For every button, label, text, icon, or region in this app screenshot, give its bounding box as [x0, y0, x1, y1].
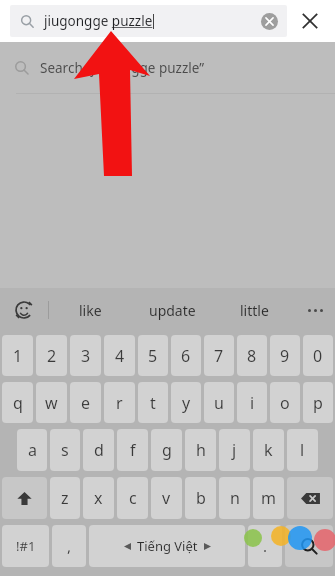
staticText: like [79, 301, 102, 320]
staticText: o [280, 392, 290, 414]
staticText: e [81, 392, 91, 414]
staticText: b [196, 487, 206, 509]
button[interactable]: Search [285, 525, 333, 567]
button[interactable]: j [219, 429, 250, 471]
button[interactable]: update [131, 288, 213, 332]
button[interactable]: z [50, 477, 80, 519]
button[interactable]: p [303, 382, 333, 423]
button[interactable]: 2 [36, 335, 67, 376]
staticText: . [263, 536, 268, 556]
button[interactable]: 9 [270, 335, 300, 376]
button[interactable]: Shift [2, 477, 47, 519]
button[interactable]: a [17, 429, 47, 471]
button[interactable]: 3 [70, 335, 101, 376]
staticText: !#1 [16, 537, 36, 555]
button[interactable]: x [83, 477, 114, 519]
button[interactable]: f [117, 429, 148, 471]
staticText: 1 [13, 345, 23, 367]
staticText: , [67, 536, 72, 556]
staticText: h [196, 439, 206, 461]
staticText: 8 [247, 345, 257, 367]
button[interactable]: . [248, 525, 282, 567]
button[interactable]: , [52, 525, 86, 567]
button[interactable]: h [185, 429, 216, 471]
button[interactable]: v [151, 477, 182, 519]
staticText: l [300, 439, 305, 461]
button[interactable]: k [253, 429, 284, 471]
staticText: v [162, 487, 171, 509]
staticText: a [28, 439, 37, 461]
staticText: 0 [313, 345, 323, 367]
staticText: Search “jiugongge puzzle” [40, 59, 205, 77]
staticText: c [129, 487, 137, 509]
staticText: update [149, 301, 196, 320]
staticText: 6 [181, 345, 191, 367]
staticText: z [61, 487, 69, 509]
staticText: 2 [47, 345, 57, 367]
button[interactable]: c [117, 477, 148, 519]
staticText: 4 [115, 345, 125, 367]
button[interactable]: u [204, 382, 234, 423]
button[interactable]: t [138, 382, 168, 423]
staticText: 9 [280, 345, 290, 367]
button[interactable]: 0 [303, 335, 333, 376]
button[interactable]: y [171, 382, 201, 423]
staticText: j [232, 439, 237, 461]
button[interactable]: Stickers and emoji [0, 288, 48, 332]
staticText: 3 [81, 345, 91, 367]
button[interactable]: q [2, 382, 33, 423]
staticText: t [150, 392, 156, 414]
button[interactable]: i [237, 382, 267, 423]
button[interactable]: m [253, 477, 284, 519]
button[interactable]: r [104, 382, 135, 423]
button[interactable]: 4 [104, 335, 135, 376]
staticText: x [94, 487, 103, 509]
button[interactable]: Search “jiugongge puzzle” [0, 42, 335, 94]
staticText: jiugongge puzzle [44, 12, 153, 30]
button[interactable]: 5 [138, 335, 168, 376]
staticText: g [162, 439, 172, 461]
staticText: little [240, 301, 269, 320]
button[interactable]: o [270, 382, 300, 423]
staticText: u [214, 392, 224, 414]
button[interactable]: e [70, 382, 101, 423]
staticText: s [61, 439, 69, 461]
button[interactable]: 6 [171, 335, 201, 376]
staticText: q [13, 392, 23, 414]
button[interactable]: 1 [2, 335, 33, 376]
button[interactable]: g [151, 429, 182, 471]
button[interactable]: w [36, 382, 67, 423]
staticText: k [264, 439, 273, 461]
button[interactable]: jiugongge puzzle [10, 5, 287, 37]
staticText: i [250, 392, 255, 414]
staticText: w [45, 392, 58, 414]
button[interactable]: More suggestions [295, 288, 335, 332]
staticText: m [261, 487, 276, 509]
button[interactable]: Tiếng Việt [89, 525, 245, 567]
button[interactable]: little [213, 288, 295, 332]
staticText: 7 [214, 345, 224, 367]
button[interactable]: 7 [204, 335, 234, 376]
button[interactable]: Backspace [287, 477, 333, 519]
staticText: 5 [148, 345, 158, 367]
button[interactable]: Clear query [257, 9, 281, 33]
button[interactable]: like [49, 288, 131, 332]
button[interactable]: l [287, 429, 318, 471]
staticText: d [94, 439, 104, 461]
button[interactable]: s [50, 429, 80, 471]
button[interactable]: b [185, 477, 216, 519]
staticText: p [313, 392, 323, 414]
button[interactable]: 8 [237, 335, 267, 376]
staticText: r [116, 392, 123, 414]
button[interactable]: !#1 [2, 525, 49, 567]
staticText: n [230, 487, 240, 509]
button[interactable]: Close search [287, 5, 333, 37]
staticText: Tiếng Việt [137, 537, 198, 555]
button[interactable]: n [219, 477, 250, 519]
staticText: y [182, 392, 191, 414]
staticText: f [130, 439, 136, 461]
button[interactable]: d [83, 429, 114, 471]
